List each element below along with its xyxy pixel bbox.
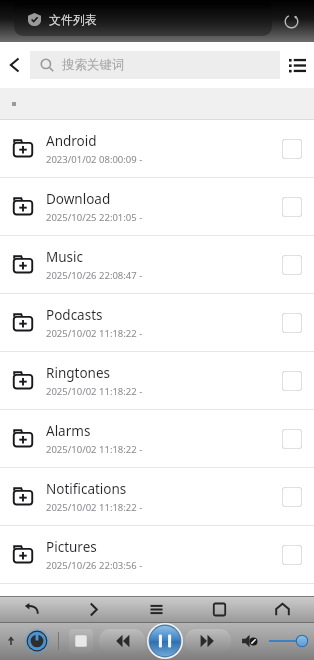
staticText: 2025/10/26 22:03:56 -	[46, 559, 143, 572]
staticText: 2025/10/26 22:08:47 -	[46, 269, 143, 282]
staticText: Music	[46, 248, 84, 266]
button[interactable]: List options	[280, 42, 314, 88]
staticText: Notifications	[46, 480, 127, 498]
button[interactable]: Eject	[4, 634, 18, 648]
button[interactable]: Stop	[69, 629, 93, 653]
button[interactable]: Music	[0, 236, 314, 293]
button[interactable]: Android	[0, 120, 314, 177]
staticText: 2025/10/02 11:18:22 -	[46, 327, 143, 340]
staticText: 2025/10/25 22:01:05 -	[46, 211, 143, 224]
button[interactable]: Mute	[239, 630, 261, 652]
button[interactable]: Notifications	[0, 468, 314, 525]
staticText: Podcasts	[46, 306, 103, 324]
button[interactable]: Alarms	[0, 410, 314, 467]
button[interactable]: Select Ringtones	[270, 352, 314, 409]
button[interactable]: Power	[24, 628, 50, 654]
button[interactable]: Rewind	[99, 629, 145, 653]
button[interactable]: Ringtones	[0, 352, 314, 409]
staticText: 2025/10/02 11:18:22 -	[46, 385, 143, 398]
button[interactable]: 搜索关键词	[30, 51, 280, 79]
button[interactable]: Tabs	[188, 596, 251, 622]
button[interactable]: Forward	[62, 596, 125, 622]
button[interactable]: Download	[0, 178, 314, 235]
button[interactable]: Back	[0, 596, 62, 622]
staticText: Alarms	[46, 422, 91, 440]
button[interactable]: Select Music	[270, 236, 314, 293]
button[interactable]: Select Download	[270, 178, 314, 235]
button[interactable]: Home	[251, 596, 314, 622]
button[interactable]: Select Alarms	[270, 410, 314, 467]
button[interactable]: Select Notifications	[270, 468, 314, 525]
button[interactable]: Reload	[276, 6, 306, 36]
staticText: Download	[46, 190, 111, 208]
button[interactable]: 文件列表	[14, 3, 272, 36]
button[interactable]: Podcasts	[0, 294, 314, 351]
button[interactable]: Pause	[147, 623, 183, 659]
button[interactable]: Pictures	[0, 526, 314, 583]
button[interactable]: Menu	[125, 596, 188, 622]
staticText: 2025/10/02 11:18:22 -	[46, 501, 143, 514]
button[interactable]: Select Pictures	[270, 526, 314, 583]
button[interactable]: Back	[0, 42, 30, 88]
staticText: 搜索关键词	[62, 57, 125, 73]
button[interactable]: Volume	[267, 629, 310, 653]
staticText: Ringtones	[46, 364, 110, 382]
button[interactable]: Fast forward	[185, 629, 231, 653]
staticText: 文件列表	[49, 12, 97, 27]
button[interactable]: Select Podcasts	[270, 294, 314, 351]
button[interactable]: Select Android	[270, 120, 314, 177]
staticText: Android	[46, 132, 97, 150]
staticText: Pictures	[46, 538, 97, 556]
staticText: 2023/01/02 08:00:09 -	[46, 153, 143, 166]
staticText: 2025/10/02 11:18:22 -	[46, 443, 143, 456]
button[interactable]	[0, 88, 314, 120]
